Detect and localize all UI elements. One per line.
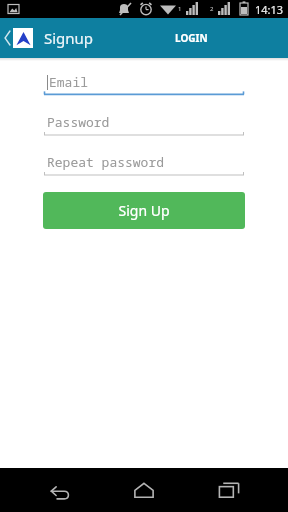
button[interactable]: Home	[122, 468, 166, 512]
button[interactable]: LOGIN	[94, 18, 288, 58]
staticText: 14:13	[255, 2, 284, 17]
button[interactable]: Back	[37, 468, 81, 512]
button[interactable]: Email	[44, 68, 244, 96]
button[interactable]: Navigate up	[0, 18, 36, 58]
staticText: Email	[49, 73, 89, 91]
staticText: Password	[47, 113, 110, 131]
button[interactable]: Password	[44, 108, 244, 136]
staticText: 2	[210, 5, 214, 13]
staticText: LOGIN	[175, 31, 208, 45]
staticText: Repeat password	[47, 153, 165, 171]
button[interactable]: Recent apps	[207, 468, 251, 512]
staticText: Sign Up	[118, 201, 170, 220]
staticText: Signup	[44, 28, 94, 48]
button[interactable]: Sign Up	[43, 192, 245, 229]
staticText: 1	[178, 5, 182, 13]
button[interactable]: Repeat password	[44, 148, 244, 176]
